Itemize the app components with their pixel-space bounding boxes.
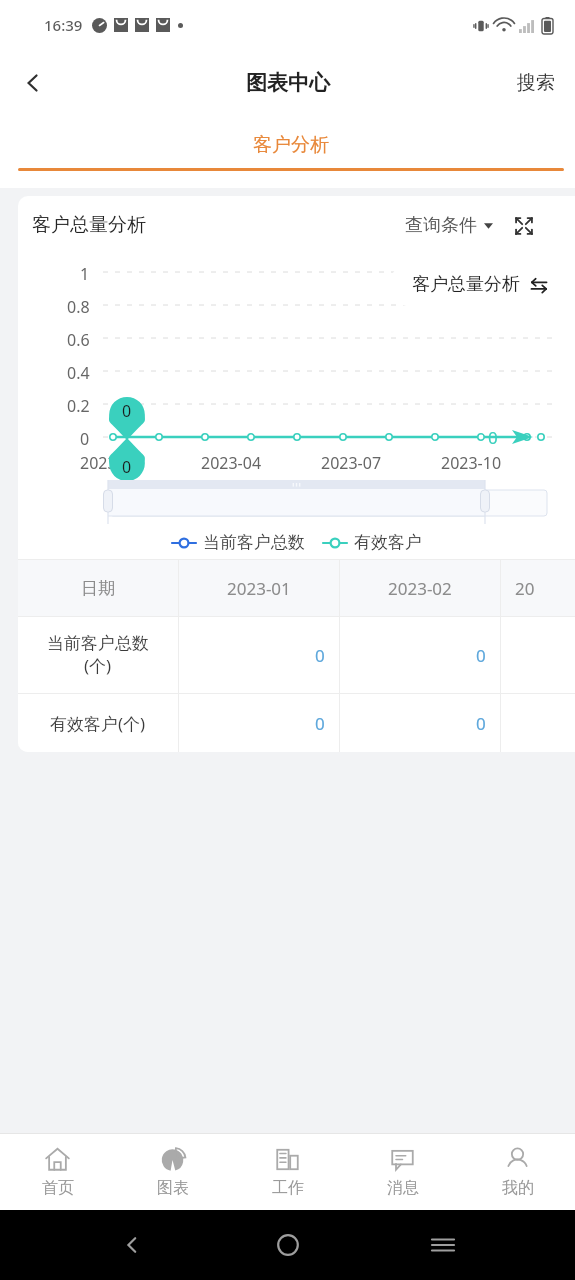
staticText: 0 bbox=[122, 456, 132, 478]
staticText: 0 bbox=[476, 644, 486, 667]
button[interactable]: Back bbox=[10, 60, 56, 106]
staticText: 0 bbox=[488, 426, 498, 449]
staticText: 当前客户总数 bbox=[203, 532, 305, 553]
staticText: 2023-10 bbox=[441, 452, 502, 474]
button[interactable]: 客户分析 bbox=[0, 116, 575, 171]
staticText: 0.8 bbox=[67, 296, 90, 318]
staticText: 2023-02 bbox=[388, 577, 452, 600]
button[interactable]: 首页 bbox=[0, 1134, 115, 1210]
button[interactable]: Back bbox=[108, 1221, 156, 1269]
button[interactable]: 工作 bbox=[230, 1134, 345, 1210]
staticText: 1 bbox=[80, 263, 90, 285]
button[interactable]: 有效客户 bbox=[323, 532, 422, 553]
staticText: 客户分析 bbox=[253, 133, 329, 157]
staticText: 0 bbox=[315, 712, 325, 735]
button[interactable]: 搜索 bbox=[511, 65, 561, 101]
button[interactable]: 当前客户总数 bbox=[172, 532, 305, 553]
staticText: 2023-04 bbox=[201, 452, 262, 474]
button[interactable]: 客户总量分析 bbox=[390, 262, 568, 307]
staticText: 2023-07 bbox=[321, 452, 382, 474]
staticText: 0 bbox=[315, 644, 325, 667]
staticText: 2023-01 bbox=[80, 452, 141, 474]
staticText: 0.2 bbox=[67, 395, 90, 417]
staticText: 0 bbox=[80, 428, 90, 450]
staticText: (个) bbox=[84, 654, 112, 677]
staticText: 客户总量分析 bbox=[412, 273, 520, 296]
button[interactable]: Fullscreen bbox=[509, 211, 539, 241]
staticText: 有效客户(个) bbox=[50, 712, 146, 735]
button[interactable]: 我的 bbox=[460, 1134, 575, 1210]
staticText: 0.4 bbox=[67, 362, 90, 384]
button[interactable] bbox=[18, 476, 575, 524]
button[interactable]: 消息 bbox=[345, 1134, 460, 1210]
staticText: 20 bbox=[515, 577, 535, 600]
staticText: 客户总量分析 bbox=[32, 213, 146, 237]
staticText: 16:39 bbox=[44, 15, 83, 35]
staticText: 日期 bbox=[81, 578, 115, 599]
staticText: 有效客户 bbox=[354, 532, 422, 553]
staticText: 0 bbox=[476, 712, 486, 735]
button[interactable]: Home bbox=[264, 1221, 312, 1269]
staticText: 图表中心 bbox=[246, 70, 330, 96]
button[interactable]: 查询条件 bbox=[401, 210, 497, 241]
staticText: 2023-01 bbox=[227, 577, 291, 600]
staticText: 搜索 bbox=[517, 71, 555, 95]
staticText: 消息 bbox=[387, 1178, 419, 1198]
staticText: 当前客户总数 bbox=[47, 633, 149, 654]
button[interactable]: 图表 bbox=[115, 1134, 230, 1210]
staticText: 查询条件 bbox=[405, 214, 477, 237]
staticText: 首页 bbox=[42, 1178, 74, 1198]
staticText: 图表 bbox=[157, 1178, 189, 1198]
staticText: 工作 bbox=[272, 1178, 304, 1198]
button[interactable]: Recents bbox=[419, 1221, 467, 1269]
staticText: 0 bbox=[122, 400, 132, 422]
staticText: 0.6 bbox=[67, 329, 90, 351]
staticText: 我的 bbox=[502, 1178, 534, 1198]
